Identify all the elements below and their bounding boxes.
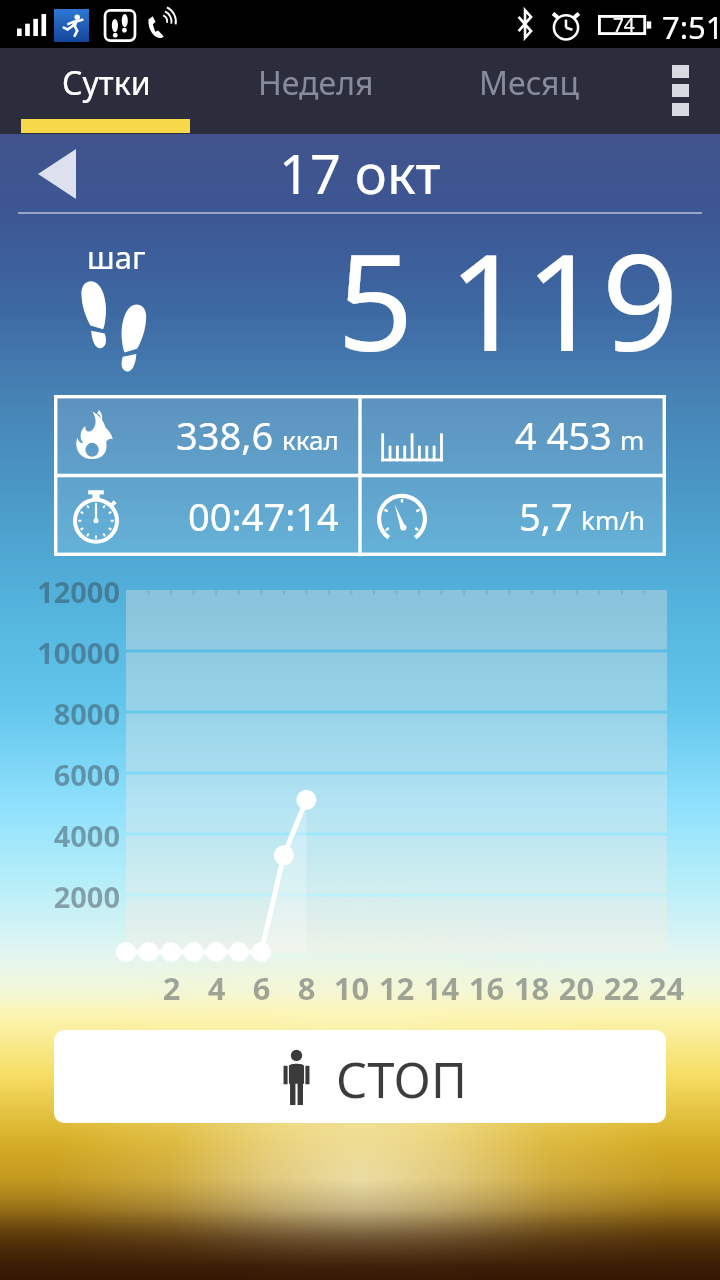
staticText: 18 [509, 967, 554, 1009]
button[interactable]: СТОП [54, 1030, 666, 1123]
button[interactable]: Previous day [38, 149, 76, 199]
staticText: 16 [464, 967, 509, 1009]
staticText: шаг [87, 236, 146, 278]
staticText: 10000 [0, 633, 120, 672]
button[interactable]: 4 453 [360, 395, 666, 475]
staticText: 12000 [0, 572, 120, 611]
staticText: 17 окт [279, 136, 441, 210]
button[interactable]: More options [638, 48, 720, 134]
button[interactable]: Месяц [420, 48, 638, 134]
staticText: 74 [613, 12, 635, 38]
button[interactable]: Неделя [212, 48, 420, 134]
button[interactable]: 5,7 [360, 475, 666, 556]
staticText: 20 [554, 967, 599, 1009]
staticText: 22 [599, 967, 644, 1009]
staticText: 00:47:14 [188, 490, 339, 542]
staticText: 4000 [0, 816, 120, 855]
button[interactable]: 00:47:14 [54, 475, 360, 556]
staticText: 14 [419, 967, 464, 1009]
staticText: m [620, 422, 645, 457]
staticText: 24 [644, 967, 689, 1009]
staticText: 8 [284, 967, 329, 1009]
staticText: 4 453 [515, 409, 612, 461]
button[interactable]: Сутки [0, 48, 212, 134]
staticText: km/h [581, 502, 645, 537]
staticText: Сутки [62, 61, 151, 105]
staticText: 7:51 [662, 6, 720, 48]
staticText: 4 [194, 967, 239, 1009]
staticText: 5 119 [337, 208, 679, 383]
staticText: 6000 [0, 755, 120, 794]
staticText: ккал [282, 422, 339, 457]
staticText: 5,7 [519, 490, 573, 542]
staticText: Неделя [258, 61, 374, 105]
button[interactable]: 338,6 [54, 395, 360, 475]
staticText: 8000 [0, 694, 120, 733]
staticText: СТОП [336, 1046, 467, 1113]
staticText: Месяц [479, 61, 580, 105]
staticText: 2 [149, 967, 194, 1009]
staticText: 10 [329, 967, 374, 1009]
staticText: 6 [239, 967, 284, 1009]
staticText: 2000 [0, 877, 120, 916]
staticText: 338,6 [176, 409, 274, 461]
staticText: 12 [374, 967, 419, 1009]
